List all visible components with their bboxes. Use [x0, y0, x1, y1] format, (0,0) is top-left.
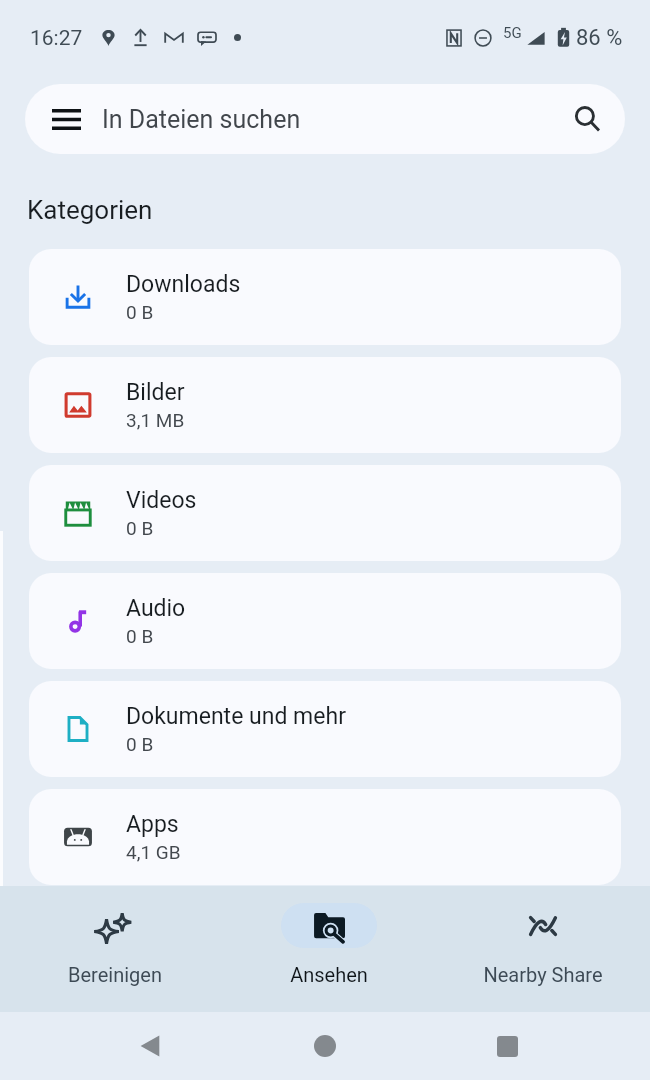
other: Search: [572, 104, 602, 134]
other: Recent apps: [497, 1036, 518, 1057]
button[interactable]: Downloads: [29, 249, 621, 345]
staticText: Audio: [126, 595, 186, 622]
button[interactable]: Videos: [29, 465, 621, 561]
other: Open navigation menu: [52, 109, 81, 130]
button[interactable]: Apps: [29, 789, 621, 885]
staticText: 0 B: [126, 733, 154, 755]
staticText: Dokumente und mehr: [126, 703, 346, 730]
staticText: Nearby Share: [483, 963, 603, 986]
button[interactable]: Audio: [29, 573, 621, 669]
staticText: 0 B: [126, 625, 154, 647]
button[interactable]: Ansehen: [222, 886, 436, 1012]
other: Back: [138, 1033, 164, 1059]
staticText: Apps: [126, 811, 179, 838]
staticText: 4,1 GB: [126, 841, 181, 863]
staticText: 0 B: [126, 301, 154, 323]
button[interactable]: Nearby Share: [436, 886, 650, 1012]
staticText: Videos: [126, 487, 197, 514]
staticText: In Dateien suchen: [102, 105, 572, 134]
staticText: 3,1 MB: [126, 409, 185, 431]
button[interactable]: Dokumente und mehr: [29, 681, 621, 777]
other: Home: [314, 1035, 336, 1057]
staticText: 16:27: [30, 26, 83, 51]
staticText: Bereinigen: [68, 963, 162, 986]
button[interactable]: Open navigation menu: [25, 84, 625, 154]
staticText: 86 %: [576, 25, 623, 51]
staticText: 0 B: [126, 517, 154, 539]
button[interactable]: Bereinigen: [7, 886, 222, 1012]
staticText: 5G: [503, 24, 522, 42]
staticText: Downloads: [126, 271, 241, 298]
staticText: Ansehen: [290, 963, 368, 986]
staticText: Kategorien: [27, 195, 153, 225]
button[interactable]: Bilder: [29, 357, 621, 453]
staticText: Bilder: [126, 379, 185, 406]
